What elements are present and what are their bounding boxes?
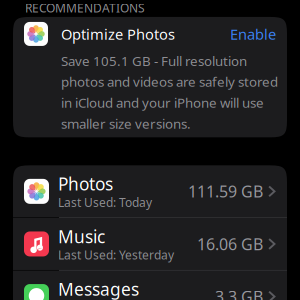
staticText: 16.06 GB — [197, 233, 263, 254]
staticText: Optimize Photos — [61, 24, 175, 44]
staticText: Messages — [58, 278, 139, 300]
staticText: 111.59 GB — [188, 181, 263, 202]
button[interactable]: Music — [13, 218, 287, 270]
button[interactable]: Enable — [230, 24, 276, 44]
staticText: Photos — [58, 172, 113, 195]
staticText: Last Used: Yesterday — [58, 247, 174, 263]
button[interactable]: Photos — [13, 165, 287, 217]
staticText: Music — [58, 225, 105, 248]
staticText: Last Used: Today — [58, 194, 152, 210]
staticText: Save 105.1 GB - Full resolution photos a… — [61, 52, 278, 132]
staticText: RECOMMENDATIONS — [25, 0, 145, 16]
button[interactable]: Messages — [13, 271, 287, 300]
staticText: Enable — [230, 24, 276, 44]
staticText: 3.3 GB — [215, 286, 263, 300]
